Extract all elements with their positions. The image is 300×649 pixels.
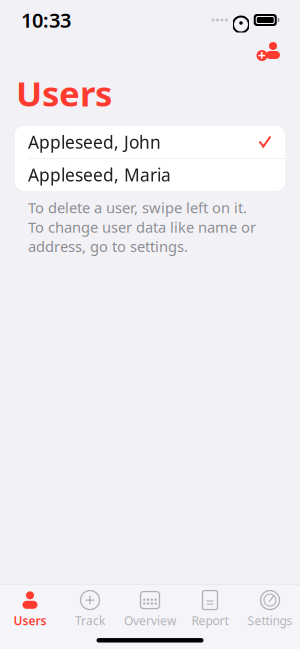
staticText: To delete a user, swipe left on it. To c… [28, 198, 256, 256]
staticText: 10:33 [21, 7, 71, 33]
button[interactable]: Settings [240, 585, 300, 630]
button[interactable]: Add User [248, 36, 290, 66]
staticText: Users [16, 70, 112, 116]
staticText: + [258, 47, 266, 64]
staticText: Appleseed, Maria [28, 163, 171, 186]
button[interactable]: Track [60, 585, 120, 630]
button[interactable]: Report [180, 585, 240, 630]
button[interactable]: Users [0, 585, 60, 630]
staticText: Overview [124, 613, 176, 628]
button[interactable]: Appleseed, John [15, 126, 285, 158]
staticText: Track [75, 613, 105, 628]
button[interactable]: Appleseed, Maria [15, 159, 285, 191]
staticText: Report [191, 613, 228, 628]
staticText: Appleseed, John [28, 130, 161, 153]
staticText: Settings [247, 613, 292, 628]
button[interactable]: Overview [120, 585, 180, 630]
staticText: Users [13, 613, 46, 628]
